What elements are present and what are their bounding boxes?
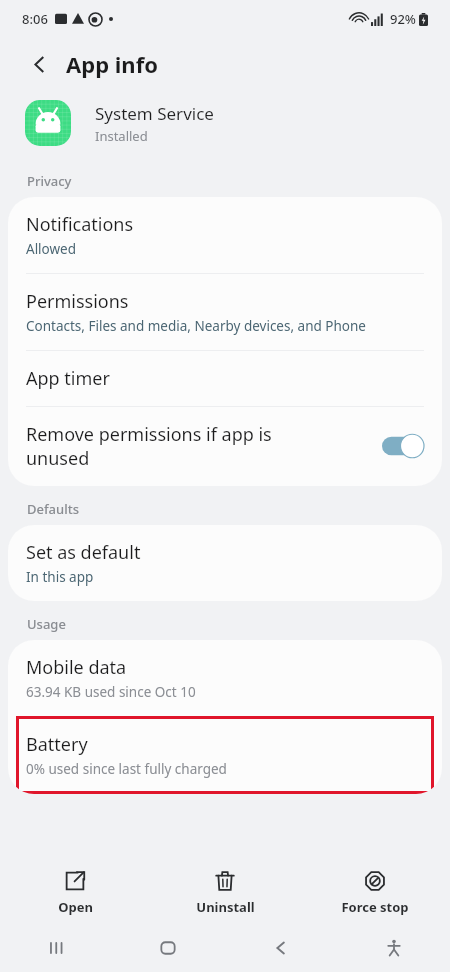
staticText: System Service <box>95 102 214 125</box>
staticText: Mobile data <box>26 655 127 680</box>
button[interactable]: Open <box>0 862 150 924</box>
button[interactable]: Battery <box>16 716 434 794</box>
button[interactable]: Force stop <box>300 862 450 924</box>
staticText: Defaults <box>27 500 80 518</box>
staticText: 8:06 <box>22 10 48 28</box>
staticText: App info <box>66 49 158 79</box>
staticText: Permissions <box>26 289 129 314</box>
staticText: 63.94 KB used since Oct 10 <box>26 683 196 701</box>
staticText: Open <box>58 898 93 916</box>
button[interactable]: Accessibility <box>337 924 450 972</box>
button[interactable]: Home <box>112 924 224 972</box>
staticText: Set as default <box>26 540 141 565</box>
button[interactable]: App timer <box>8 351 442 406</box>
staticText: In this app <box>26 568 94 586</box>
button[interactable]: Permissions <box>8 274 442 350</box>
staticText: 92% <box>390 10 416 28</box>
staticText: Uninstall <box>196 898 255 916</box>
staticText: Battery <box>26 732 88 757</box>
staticText: 0% used since last fully charged <box>26 760 227 778</box>
staticText: Usage <box>27 615 66 633</box>
button[interactable]: System Service <box>25 90 450 156</box>
button[interactable]: Back <box>224 924 337 972</box>
button[interactable]: Recents <box>0 924 112 972</box>
button[interactable]: Uninstall <box>150 862 300 924</box>
staticText: App timer <box>26 366 110 391</box>
staticText: Notifications <box>26 212 134 237</box>
staticText: Remove permissions if app is unused <box>26 422 372 470</box>
staticText: Privacy <box>27 172 72 190</box>
button[interactable]: Set as default <box>8 525 442 601</box>
staticText: Contacts, Files and media, Nearby device… <box>26 317 366 335</box>
button[interactable]: Remove permissions if app is unused <box>8 407 442 486</box>
button[interactable]: Back <box>22 47 56 81</box>
staticText: Installed <box>95 127 148 145</box>
button[interactable]: Mobile data <box>8 640 442 716</box>
button[interactable]: Notifications <box>8 197 442 273</box>
staticText: Allowed <box>26 240 77 258</box>
staticText: Force stop <box>341 898 409 916</box>
